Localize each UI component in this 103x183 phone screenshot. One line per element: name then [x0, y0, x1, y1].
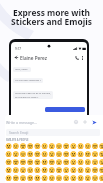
- button[interactable]: Are you busy tomorrow ?: [13, 78, 43, 83]
- button[interactable]: Attach: [82, 119, 88, 125]
- staticText: Write a message...: [6, 120, 37, 125]
- button[interactable]: Search Emoji: [6, 129, 100, 136]
- staticText: Hello, Kathe: [15, 68, 28, 71]
- staticText: Are you busy tomorrow ?: [15, 79, 41, 82]
- button[interactable]: More options: [80, 55, 85, 60]
- staticText: Elaine Perez: [20, 55, 47, 61]
- staticText: SMILEYS & PEOPLE: [6, 138, 29, 141]
- button[interactable]: Call: [74, 55, 80, 61]
- staticText: Search Emoji: [9, 131, 29, 135]
- button[interactable]: Back: [14, 55, 19, 60]
- staticText: Tomorrow I want to go to the park, do yo…: [15, 92, 51, 98]
- staticText: 9:17: [15, 47, 21, 51]
- button[interactable]: Tomorrow I want to go to the park, do yo…: [13, 91, 53, 99]
- button[interactable]: Emoji: [73, 119, 79, 125]
- staticText: Express more with Stickers and Emojis: [0, 7, 103, 27]
- button[interactable]: [45, 107, 85, 112]
- button[interactable]: Hello, Kathe: [13, 67, 31, 72]
- button[interactable]: Send: [91, 119, 97, 125]
